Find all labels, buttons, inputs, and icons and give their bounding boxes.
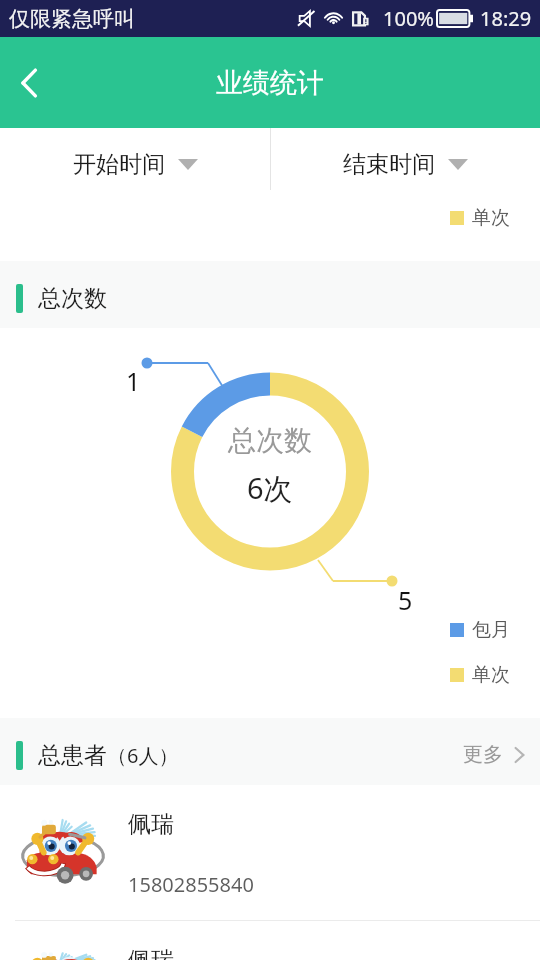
staticText: 6次: [247, 468, 293, 508]
button[interactable]: Back: [0, 55, 56, 111]
staticText: 100%: [383, 5, 434, 32]
staticText: 开始时间: [73, 150, 165, 179]
staticText: 单次: [472, 663, 510, 687]
staticText: 业绩统计: [216, 66, 324, 100]
staticText: 5: [398, 583, 413, 617]
staticText: 1: [126, 364, 141, 398]
staticText: 仅限紧急呼叫: [9, 6, 135, 32]
button[interactable]: 开始时间: [0, 128, 270, 200]
button[interactable]: 佩瑞: [0, 785, 540, 920]
staticText: （6人）: [107, 742, 179, 769]
button[interactable]: 佩瑞: [0, 921, 540, 960]
staticText: 15802855840: [128, 871, 254, 898]
staticText: 包月: [472, 618, 510, 642]
staticText: 总次数: [228, 423, 312, 458]
staticText: 佩瑞: [128, 810, 174, 839]
staticText: 总次数: [38, 284, 107, 313]
staticText: 单次: [472, 206, 510, 230]
button[interactable]: 结束时间: [270, 128, 540, 200]
button[interactable]: 更多: [463, 724, 526, 785]
staticText: 更多: [463, 742, 503, 767]
staticText: 佩瑞: [128, 946, 174, 960]
staticText: 18:29: [480, 5, 532, 32]
staticText: 结束时间: [343, 150, 435, 179]
staticText: 总患者: [38, 741, 107, 770]
